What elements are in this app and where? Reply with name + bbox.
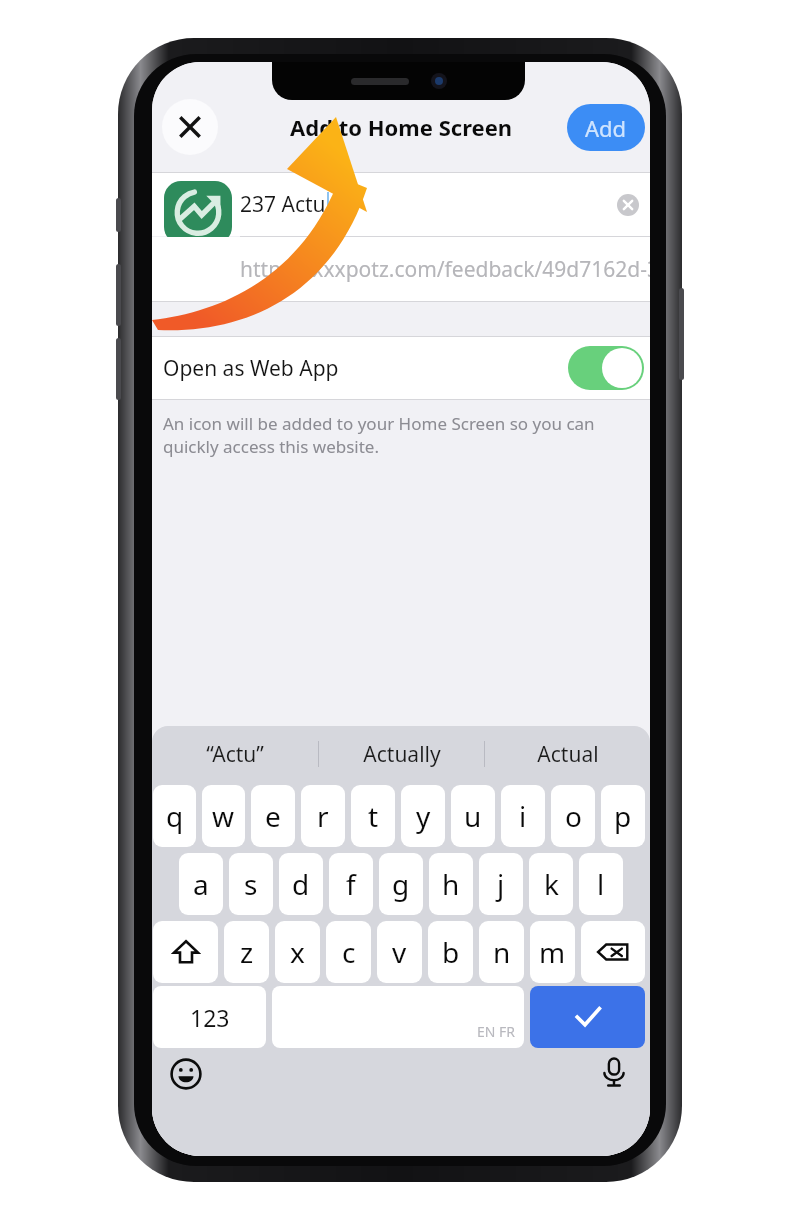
staticText: Open as Web App bbox=[163, 354, 339, 383]
button[interactable]: n bbox=[479, 921, 524, 983]
button[interactable]: i bbox=[501, 785, 545, 847]
staticText: w bbox=[212, 797, 235, 835]
staticText: An icon will be added to your Home Scree… bbox=[163, 412, 620, 458]
button[interactable]: u bbox=[451, 785, 495, 847]
staticText: j bbox=[497, 865, 505, 903]
button[interactable]: s bbox=[229, 853, 273, 915]
staticText: m bbox=[539, 933, 566, 971]
staticText: s bbox=[244, 865, 258, 903]
button[interactable]: 123 bbox=[153, 986, 266, 1048]
button[interactable]: w bbox=[202, 785, 245, 847]
button[interactable]: b bbox=[428, 921, 473, 983]
button[interactable]: o bbox=[551, 785, 595, 847]
staticText: a bbox=[193, 865, 209, 903]
staticText: f bbox=[346, 865, 356, 903]
button[interactable]: Add bbox=[567, 104, 645, 151]
button[interactable]: h bbox=[429, 853, 473, 915]
staticText: z bbox=[240, 933, 254, 971]
staticText: “Actu” bbox=[206, 740, 264, 769]
button[interactable]: a bbox=[179, 853, 223, 915]
button[interactable]: d bbox=[279, 853, 323, 915]
button[interactable]: x bbox=[275, 921, 320, 983]
button[interactable]: Done bbox=[530, 986, 645, 1048]
button[interactable]: “Actu” bbox=[152, 726, 318, 782]
button[interactable]: y bbox=[401, 785, 445, 847]
button[interactable]: f bbox=[329, 853, 373, 915]
staticText: i bbox=[519, 797, 527, 835]
staticText: x bbox=[290, 933, 305, 971]
button[interactable]: Backspace bbox=[581, 921, 645, 983]
staticText: https://xxxpotz.com/feedback/49d7162d-3.… bbox=[240, 255, 650, 284]
staticText: l bbox=[597, 865, 605, 903]
staticText: Actually bbox=[363, 740, 441, 769]
button[interactable]: Clear text bbox=[614, 191, 642, 219]
button[interactable]: t bbox=[351, 785, 395, 847]
button[interactable]: Open as Web App bbox=[152, 337, 650, 399]
button[interactable]: Actually bbox=[319, 726, 484, 782]
staticText: t bbox=[368, 797, 379, 835]
staticText: EN FR bbox=[477, 1022, 516, 1041]
staticText: Add to Home Screen bbox=[290, 112, 513, 142]
button[interactable]: c bbox=[326, 921, 371, 983]
button[interactable]: e bbox=[251, 785, 295, 847]
staticText: d bbox=[292, 865, 310, 903]
staticText: y bbox=[416, 797, 431, 835]
staticText: e bbox=[265, 797, 281, 835]
staticText: n bbox=[493, 933, 511, 971]
button[interactable]: Actual bbox=[485, 726, 650, 782]
button[interactable]: l bbox=[579, 853, 623, 915]
button[interactable]: z bbox=[224, 921, 269, 983]
staticText: b bbox=[442, 933, 460, 971]
staticText: v bbox=[392, 933, 407, 971]
staticText: c bbox=[342, 933, 356, 971]
button[interactable]: j bbox=[479, 853, 523, 915]
button[interactable]: p bbox=[601, 785, 645, 847]
staticText: g bbox=[392, 865, 410, 903]
button[interactable]: Dictation bbox=[592, 1050, 636, 1094]
button[interactable]: v bbox=[377, 921, 422, 983]
button[interactable]: r bbox=[301, 785, 345, 847]
staticText: q bbox=[166, 797, 184, 835]
staticText: 237 Actu bbox=[240, 190, 326, 219]
button[interactable]: m bbox=[530, 921, 575, 983]
button[interactable]: Emoji bbox=[164, 1052, 208, 1096]
staticText: 123 bbox=[190, 1002, 230, 1033]
staticText: Actual bbox=[537, 740, 599, 769]
button[interactable]: Shift bbox=[153, 921, 218, 983]
staticText: u bbox=[464, 797, 482, 835]
staticText: h bbox=[442, 865, 460, 903]
button[interactable]: Close bbox=[162, 99, 218, 155]
staticText: p bbox=[614, 797, 632, 835]
button[interactable]: EN FR bbox=[272, 986, 524, 1048]
button[interactable]: q bbox=[153, 785, 196, 847]
button[interactable]: Open as Web App toggle bbox=[568, 346, 644, 390]
staticText: Add bbox=[585, 113, 627, 143]
staticText: r bbox=[317, 797, 329, 835]
staticText: k bbox=[544, 865, 559, 903]
button[interactable]: k bbox=[529, 853, 573, 915]
staticText: o bbox=[565, 797, 582, 835]
button[interactable]: g bbox=[379, 853, 423, 915]
